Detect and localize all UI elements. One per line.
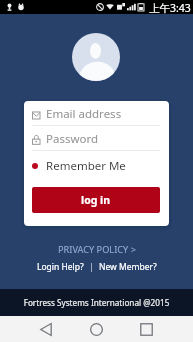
button[interactable]: Back	[33, 316, 59, 342]
button[interactable]: Recent apps	[133, 316, 159, 342]
staticText: Remember Me	[46, 158, 126, 174]
button[interactable]: New Member?	[97, 259, 159, 275]
staticText: Password	[46, 131, 99, 147]
staticText: |	[89, 261, 94, 273]
staticText: log in	[81, 193, 111, 207]
button[interactable]: Login Help?	[35, 259, 86, 275]
staticText: Fortress Systems International @2015	[0, 297, 193, 308]
button[interactable]: Remember Me	[24, 153, 169, 179]
button[interactable]: log in	[32, 187, 160, 213]
staticText: 上午3:43	[149, 1, 191, 15]
button[interactable]: PRIVACY POLICY >	[54, 241, 140, 258]
button[interactable]: Home	[83, 316, 109, 342]
staticText: Email address	[46, 106, 122, 122]
